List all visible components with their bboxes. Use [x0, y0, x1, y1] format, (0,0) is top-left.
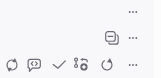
button[interactable]: More — [124, 29, 142, 47]
button[interactable]: Retry — [3, 56, 21, 74]
button[interactable]: Accept — [50, 56, 68, 74]
button[interactable]: Comment — [25, 56, 43, 74]
button[interactable]: Create branch — [72, 56, 90, 74]
button[interactable]: More options — [124, 3, 142, 21]
button[interactable]: Copy — [103, 29, 121, 47]
button[interactable]: Redo — [98, 56, 116, 74]
button[interactable]: More — [124, 56, 142, 74]
